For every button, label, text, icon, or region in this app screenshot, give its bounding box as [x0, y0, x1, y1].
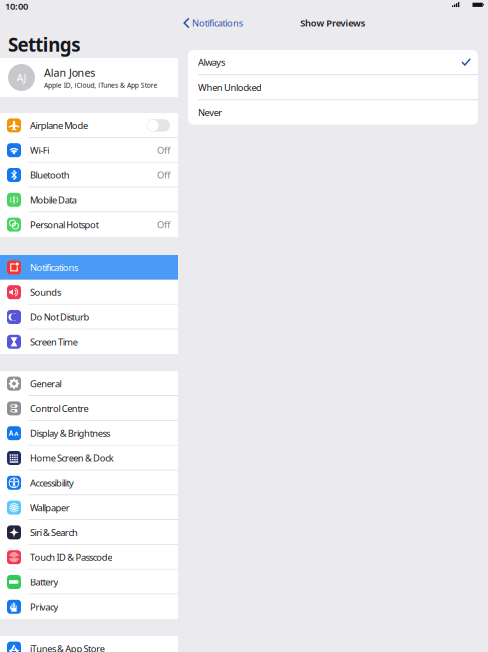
staticText: iTunes & App Store	[30, 642, 105, 652]
staticText: Touch ID & Passcode	[30, 551, 112, 563]
staticText: Off	[157, 169, 170, 181]
staticText: Personal Hotspot	[30, 218, 99, 231]
button[interactable]: Control Centre	[0, 396, 178, 421]
staticText: Show Previews	[300, 17, 366, 29]
button[interactable]: Notifications	[178, 12, 248, 34]
button[interactable]: Never	[188, 100, 478, 125]
staticText: Privacy	[30, 601, 58, 613]
staticText: Always	[198, 56, 225, 68]
button[interactable]: Personal Hotspot	[0, 212, 178, 237]
staticText: Notifications	[30, 261, 78, 274]
button[interactable]: Home Screen & Dock	[0, 446, 178, 470]
staticText: Off	[157, 144, 170, 156]
staticText: 10:00	[5, 0, 28, 12]
button[interactable]: Sounds	[0, 280, 178, 305]
button[interactable]: Wallpaper	[0, 495, 178, 520]
button[interactable]: Mobile Data	[0, 187, 178, 212]
button[interactable]: Airplane Mode	[0, 113, 178, 138]
button[interactable]: Notifications	[0, 255, 178, 280]
button[interactable]: Always	[188, 50, 478, 74]
staticText: Wallpaper	[30, 501, 70, 514]
staticText: When Unlocked	[198, 81, 262, 93]
staticText: Notifications	[192, 17, 243, 29]
button[interactable]: When Unlocked	[188, 75, 478, 99]
staticText: Control Centre	[30, 402, 88, 415]
staticText: AJ	[16, 70, 26, 85]
staticText: General	[30, 377, 61, 390]
staticText: Airplane Mode	[30, 119, 88, 132]
staticText: Accessibility	[30, 477, 74, 489]
button[interactable]: Screen Time	[0, 329, 178, 354]
staticText: Alan Jones	[44, 65, 95, 80]
staticText: Do Not Disturb	[30, 311, 89, 323]
staticText: Apple ID, iCloud, iTunes & App Store	[44, 81, 158, 90]
staticText: Screen Time	[30, 336, 78, 348]
staticText: Home Screen & Dock	[30, 452, 114, 464]
staticText: Never	[198, 106, 222, 119]
button[interactable]: General	[0, 371, 178, 396]
staticText: Battery	[30, 576, 58, 588]
staticText: Settings	[8, 32, 80, 57]
staticText: Wi-Fi	[30, 144, 49, 156]
button[interactable]: Battery	[0, 570, 178, 594]
staticText: Mobile Data	[30, 194, 77, 206]
button[interactable]: Do Not Disturb	[0, 305, 178, 329]
button[interactable]: Touch ID & Passcode	[0, 545, 178, 570]
button[interactable]: Accessibility	[0, 470, 178, 495]
staticText: Bluetooth	[30, 169, 70, 181]
button[interactable]: Privacy	[0, 594, 178, 619]
button[interactable]: Display & Brightness	[0, 421, 178, 446]
staticText: Sounds	[30, 286, 61, 298]
staticText: Display & Brightness	[30, 427, 110, 439]
button[interactable]: AJ	[0, 58, 178, 97]
button[interactable]: iTunes & App Store	[0, 636, 178, 652]
staticText: Off	[157, 218, 170, 231]
button[interactable]: Wi-Fi	[0, 138, 178, 163]
button[interactable]: Siri & Search	[0, 520, 178, 545]
button[interactable]: Bluetooth	[0, 163, 178, 187]
staticText: Siri & Search	[30, 526, 78, 539]
